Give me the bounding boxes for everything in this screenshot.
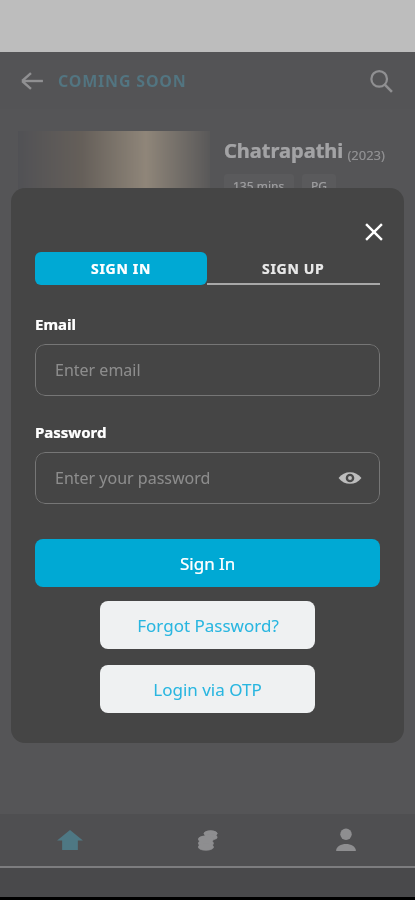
staticText: 135 mins [233,178,285,194]
button[interactable]: Back [12,61,52,101]
button[interactable]: Home [0,814,139,866]
button[interactable]: Profile [277,814,415,866]
staticText: SIGN UP [262,259,325,278]
staticText: Login via OTP [153,678,262,701]
button[interactable]: Coins [139,814,277,866]
button[interactable]: Show password [334,462,366,494]
staticText: SIGN IN [91,259,152,278]
button[interactable]: Close [354,212,394,252]
staticText: COMING SOON [58,70,187,92]
button[interactable]: Login via OTP [100,665,315,713]
staticText: Enter your password [55,467,211,489]
button[interactable]: SIGN IN [35,252,207,285]
button[interactable]: Forgot Password? [100,601,315,649]
button[interactable]: Sign In [35,539,380,587]
staticText: PG [311,178,327,194]
button[interactable]: Search [361,61,401,101]
staticText: Sign In [180,552,236,575]
button[interactable]: SIGN UP [207,252,380,285]
staticText: Password [35,422,107,442]
button[interactable]: Enter email [35,344,380,396]
staticText: Chatrapathi [224,137,344,164]
staticText: Email [35,314,76,334]
button[interactable]: Enter your password [35,452,380,504]
staticText: Forgot Password? [137,614,279,637]
staticText: Enter email [55,359,141,381]
staticText: (2023) [344,146,385,164]
